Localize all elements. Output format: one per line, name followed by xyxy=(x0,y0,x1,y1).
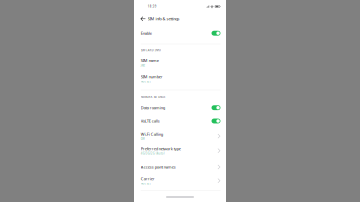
staticText: SIM number xyxy=(141,74,163,79)
staticText: Not set xyxy=(141,182,151,185)
staticText: Carrier xyxy=(141,176,155,181)
staticText: 18:39 xyxy=(148,5,157,8)
staticText: SIM name xyxy=(141,58,159,63)
staticText: NETWORK SETTINGS xyxy=(141,95,165,99)
button[interactable]: Carrier xyxy=(141,174,220,188)
button[interactable]: Access point names xyxy=(141,160,220,173)
staticText: Not set xyxy=(141,80,151,83)
button[interactable]: SIM name xyxy=(141,55,220,69)
staticText: VoLTE calls xyxy=(141,118,160,124)
staticText: Wi-Fi Calling xyxy=(141,131,163,137)
staticText: Off xyxy=(141,137,145,141)
button[interactable]: Preferred network type xyxy=(141,144,220,158)
button[interactable]: Wi-Fi Calling xyxy=(141,129,220,143)
button[interactable]: Enable xyxy=(141,27,220,40)
button[interactable]: VoLTE calls xyxy=(141,114,220,127)
button[interactable]: Back xyxy=(140,13,146,24)
staticText: SIM CARD INFO xyxy=(141,48,161,52)
staticText: Jazz xyxy=(141,63,145,67)
button[interactable]: SIM number xyxy=(141,72,220,86)
staticText: SIM info & settings xyxy=(147,16,179,21)
staticText: Data roaming xyxy=(141,105,165,110)
staticText: Access point names xyxy=(141,164,176,170)
button[interactable]: Data roaming xyxy=(141,101,220,114)
staticText: Enable xyxy=(141,30,152,36)
staticText: 4G/3G/2G (Auto) xyxy=(141,152,165,155)
staticText: Preferred network type xyxy=(141,146,181,151)
